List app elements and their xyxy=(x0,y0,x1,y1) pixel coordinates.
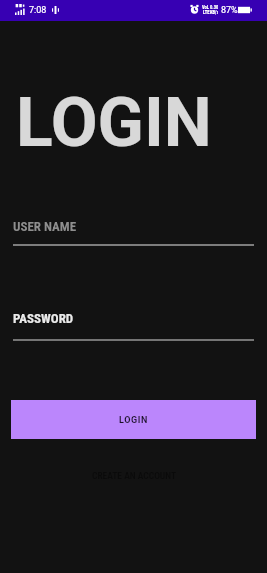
staticText: 7:08 xyxy=(29,5,47,16)
other: Mobile signal 4G xyxy=(15,4,25,15)
staticText: VoL xyxy=(202,5,210,10)
staticText: KB/s xyxy=(210,10,218,15)
staticText: 87% xyxy=(221,5,238,16)
other: Alarm set xyxy=(190,5,199,14)
staticText: USER NAME xyxy=(13,219,77,234)
other: Battery 87 percent xyxy=(238,6,252,14)
staticText: PASSWORD xyxy=(13,311,74,326)
staticText: LOGIN xyxy=(16,83,212,163)
button[interactable]: PASSWORD xyxy=(0,303,267,343)
button[interactable]: USER NAME xyxy=(0,210,267,250)
staticText: 0.30 xyxy=(210,5,218,10)
staticText: LOGIN xyxy=(119,415,148,426)
button[interactable]: LOGIN xyxy=(11,400,256,439)
other: Vibrate mode xyxy=(52,6,59,14)
staticText: LTE xyxy=(203,10,210,15)
